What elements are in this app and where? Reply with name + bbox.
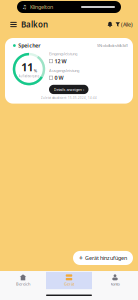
button[interactable]: + xyxy=(73,251,133,265)
staticText: 11 xyxy=(21,60,33,74)
staticText: (Alle) xyxy=(121,21,133,28)
button[interactable]: Gerät xyxy=(46,272,92,289)
staticText: 12 W xyxy=(54,58,66,65)
staticText: Speicher xyxy=(18,42,40,49)
staticText: Gerät hinzufügen xyxy=(85,254,127,261)
staticText: Details anzeigen xyxy=(53,87,81,92)
staticText: % xyxy=(34,68,37,73)
staticText: Konto xyxy=(110,281,119,287)
staticText: Aufladevorgang xyxy=(18,74,39,78)
button[interactable]: Benachrichtigungen xyxy=(104,19,115,30)
staticText: + xyxy=(79,253,83,262)
staticText: SN:xkdkdcsfdk3d1 xyxy=(97,43,128,48)
button[interactable]: Menü xyxy=(8,19,19,30)
staticText: Bereich xyxy=(16,281,30,287)
staticText: Ausgangsleistung xyxy=(49,68,79,73)
staticText: › xyxy=(83,87,84,92)
button[interactable]: Konto xyxy=(92,272,138,289)
button[interactable]: (Alle) xyxy=(115,18,133,31)
staticText: 0 W xyxy=(54,74,63,81)
staticText: Balkon xyxy=(21,19,48,30)
button[interactable]: Details anzeigen xyxy=(49,85,88,94)
staticText: ♫ xyxy=(22,4,27,10)
button[interactable]: Bereich xyxy=(0,272,46,289)
staticText: Zuletzt aktualisiert: 15.05.2024, 14:44 xyxy=(41,96,97,100)
staticText: Gerät xyxy=(64,281,74,287)
staticText: Klingelton xyxy=(30,3,53,11)
staticText: Eingangsleistung xyxy=(49,51,77,56)
